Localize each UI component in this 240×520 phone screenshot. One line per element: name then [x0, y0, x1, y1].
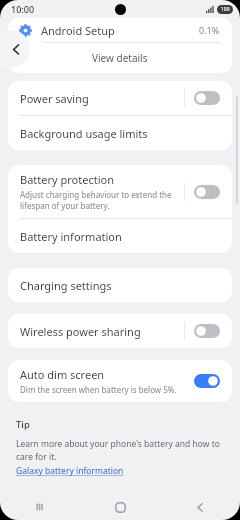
- staticText: Wireless power sharing: [20, 324, 141, 339]
- staticText: Battery protection: [20, 172, 114, 187]
- button[interactable]: Auto dim screen: [8, 360, 232, 402]
- button[interactable]: Home: [80, 494, 160, 520]
- button[interactable]: Navigate up: [0, 30, 30, 68]
- staticText: 10:00: [11, 3, 35, 15]
- button[interactable]: Recents: [0, 494, 80, 520]
- button[interactable]: Wireless power sharing: [8, 314, 232, 348]
- button[interactable]: Galaxy battery information: [16, 465, 124, 477]
- staticText: View details: [92, 51, 148, 65]
- staticText: Adjust charging behaviour to extend the …: [20, 189, 184, 211]
- staticText: Battery information: [20, 229, 122, 244]
- button[interactable]: Battery information: [8, 219, 232, 253]
- staticText: Dim the screen when battery is below 5%.: [20, 384, 177, 395]
- button[interactable]: Background usage limits: [8, 116, 232, 150]
- button[interactable]: View details: [8, 43, 232, 73]
- staticText: Tip: [16, 418, 30, 431]
- staticText: Power saving: [20, 91, 89, 106]
- button[interactable]: Power saving: [8, 81, 232, 115]
- staticText: Android Setup: [41, 23, 115, 38]
- staticText: Background usage limits: [20, 126, 148, 141]
- staticText: Auto dim screen: [20, 367, 105, 382]
- button[interactable]: Charging settings: [8, 268, 232, 302]
- staticText: 100: [221, 6, 230, 13]
- button[interactable]: Battery protection: [8, 165, 232, 218]
- staticText: 0.1%: [199, 24, 220, 36]
- button[interactable]: Android Setup: [8, 18, 232, 42]
- staticText: Learn more about your phone's battery an…: [16, 438, 224, 463]
- button[interactable]: Back: [160, 494, 240, 520]
- staticText: Galaxy battery information: [16, 465, 124, 477]
- staticText: Charging settings: [20, 278, 112, 293]
